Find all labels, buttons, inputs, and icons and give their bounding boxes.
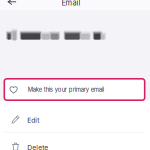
staticText: Email [61, 0, 80, 7]
button[interactable]: Make this your primary email [3, 78, 145, 101]
button[interactable]: Edit [0, 101, 150, 132]
button[interactable]: Delete [0, 133, 150, 150]
staticText: Edit [27, 116, 39, 124]
staticText: Delete [27, 143, 48, 150]
staticText: Make this your primary email [28, 86, 104, 93]
button[interactable]: Back [7, 0, 29, 10]
